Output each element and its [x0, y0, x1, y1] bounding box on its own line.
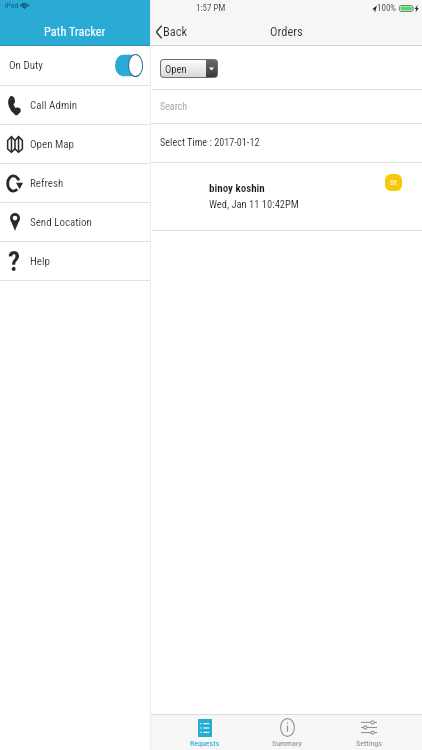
button[interactable]: Refresh: [0, 164, 150, 202]
staticText: Requests: [190, 739, 220, 748]
other: Call Admin: [9, 97, 21, 114]
staticText: Send Location: [30, 216, 92, 229]
other: Requests: [198, 719, 212, 737]
staticText: On Duty: [9, 59, 43, 72]
staticText: Path Tracker: [44, 24, 106, 39]
button[interactable]: binoy koshin: [151, 163, 422, 230]
button[interactable]: On Duty: [0, 46, 150, 85]
staticText: Orders: [270, 24, 303, 39]
button[interactable]: Open Map: [0, 125, 150, 163]
staticText: Refresh: [30, 177, 64, 190]
button[interactable]: Search: [151, 90, 422, 123]
staticText: Wed, Jan 11 10:42PM: [209, 198, 299, 210]
button[interactable]: Summary: [246, 715, 328, 750]
other: Summary: [280, 718, 295, 737]
staticText: 100%: [377, 3, 397, 14]
button[interactable]: Call Admin: [0, 86, 150, 124]
staticText: Help: [30, 255, 50, 268]
button[interactable]: Help: [0, 242, 150, 280]
staticText: Open Map: [30, 138, 75, 151]
staticText: 1:57 PM: [196, 3, 226, 14]
button[interactable]: Send Location: [0, 203, 150, 241]
button[interactable]: Open: [160, 59, 218, 78]
staticText: Search: [160, 101, 188, 113]
other: Refresh: [7, 174, 23, 193]
other: Send Location: [10, 213, 20, 231]
button[interactable]: On Duty toggle: [115, 54, 143, 77]
staticText: ?: [8, 246, 21, 278]
staticText: binoy koshin: [209, 182, 265, 195]
other: Help: [8, 243, 21, 279]
button[interactable]: Settings: [328, 715, 410, 750]
staticText: Open: [165, 63, 187, 75]
staticText: St: [390, 178, 397, 187]
staticText: Back: [163, 24, 188, 39]
staticText: Call Admin: [30, 99, 78, 112]
staticText: Settings: [356, 739, 382, 748]
other: Settings: [361, 720, 377, 735]
button[interactable]: Select Time : 2017-01-12: [151, 124, 422, 162]
other: Back: [156, 25, 162, 39]
button[interactable]: Requests: [164, 715, 246, 750]
other: Open Map: [7, 136, 23, 153]
staticText: iPad: [5, 1, 19, 10]
button[interactable]: Back: [151, 21, 196, 42]
staticText: Summary: [272, 739, 302, 748]
staticText: Select Time : 2017-01-12: [160, 137, 260, 149]
